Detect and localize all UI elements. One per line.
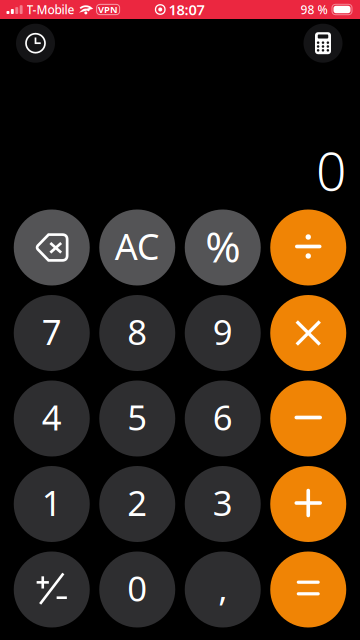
button[interactable]: Multiply <box>270 295 346 371</box>
staticText: , <box>218 565 227 611</box>
button[interactable]: , <box>185 551 261 627</box>
staticText: 5 <box>127 394 147 440</box>
button[interactable]: 7 <box>14 295 90 371</box>
button[interactable]: Equals <box>270 551 346 627</box>
staticText: % <box>205 218 240 274</box>
staticText: 6 <box>213 394 233 440</box>
staticText: 18:07 <box>168 0 204 19</box>
button[interactable]: Delete <box>14 209 90 285</box>
button[interactable]: 0 <box>99 551 175 627</box>
staticText: 4 <box>42 394 62 440</box>
staticText: 9 <box>213 308 233 354</box>
staticText: 0 <box>127 565 147 611</box>
staticText: 1 <box>42 479 62 525</box>
button[interactable]: 3 <box>185 466 261 542</box>
button[interactable]: 8 <box>99 295 175 371</box>
button[interactable]: Calculator mode <box>303 24 342 63</box>
button[interactable]: 9 <box>185 295 261 371</box>
button[interactable]: 4 <box>14 380 90 456</box>
staticText: 0 <box>316 135 346 205</box>
button[interactable]: 6 <box>185 380 261 456</box>
button[interactable]: History <box>16 24 55 63</box>
button[interactable]: Divide <box>270 209 346 285</box>
button[interactable]: % <box>185 209 261 285</box>
staticText: AC <box>115 222 160 270</box>
button[interactable]: Add <box>270 466 346 542</box>
staticText: 2 <box>127 479 147 525</box>
button[interactable]: 5 <box>99 380 175 456</box>
button[interactable]: 2 <box>99 466 175 542</box>
button[interactable]: Subtract <box>270 380 346 456</box>
staticText: T-Mobile <box>27 1 75 17</box>
staticText: 8 <box>127 308 147 354</box>
button[interactable]: Plus minus <box>14 551 90 627</box>
staticText: 98 % <box>300 1 327 17</box>
button[interactable]: 1 <box>14 466 90 542</box>
staticText: 7 <box>42 308 62 354</box>
button[interactable]: AC <box>99 209 175 285</box>
staticText: 3 <box>213 479 233 525</box>
staticText: VPN <box>98 3 118 16</box>
